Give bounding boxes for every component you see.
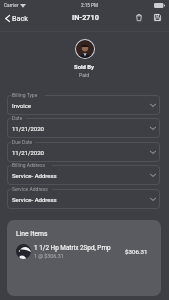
button[interactable]: Back bbox=[0, 10, 34, 26]
staticText: Carrier bbox=[4, 3, 19, 9]
staticText: $306.31 bbox=[125, 248, 148, 255]
button[interactable]: Sold by avatar bbox=[76, 40, 94, 58]
staticText: 1 1/2 Hp Matrix 2Spd, Pmp bbox=[34, 244, 111, 252]
staticText: 2:15 PM bbox=[81, 3, 98, 8]
staticText: IN-2710 bbox=[72, 13, 99, 22]
button[interactable]: Save bbox=[151, 11, 164, 24]
staticText: Service- Address bbox=[12, 172, 57, 179]
staticText: Sold By bbox=[74, 64, 95, 71]
staticText: Due Date bbox=[12, 139, 33, 145]
staticText: Service- Address bbox=[12, 196, 57, 203]
staticText: Billing Address bbox=[12, 162, 46, 168]
button[interactable]: Billing Address bbox=[7, 165, 160, 185]
button[interactable]: Billing Type bbox=[7, 95, 160, 115]
button[interactable]: Due Date bbox=[7, 142, 160, 162]
staticText: Back bbox=[12, 14, 28, 22]
staticText: Line Items bbox=[16, 230, 48, 238]
staticText: Billing Type bbox=[12, 92, 38, 98]
button[interactable]: Delete bbox=[132, 11, 145, 24]
staticText: Service Address bbox=[12, 186, 48, 192]
staticText: 11/21/2020 bbox=[12, 125, 44, 132]
button[interactable]: Service Address bbox=[7, 189, 160, 209]
staticText: 11/21/2020 bbox=[12, 149, 44, 156]
staticText: 1 @ $306.31 bbox=[34, 253, 64, 259]
button[interactable]: Date bbox=[7, 118, 160, 138]
staticText: Invoice bbox=[12, 102, 32, 109]
staticText: Date bbox=[12, 115, 23, 121]
staticText: Paid bbox=[79, 72, 90, 78]
button[interactable]: Line Items bbox=[7, 220, 161, 296]
